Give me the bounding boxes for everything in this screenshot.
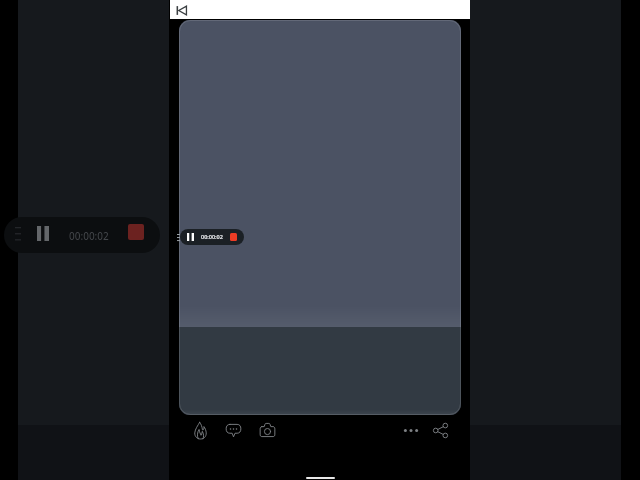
staticText: 00:00:02 xyxy=(69,229,109,243)
button[interactable]: Screen recording controls xyxy=(180,229,244,245)
button[interactable]: Stop recording xyxy=(227,230,240,244)
button[interactable]: Share xyxy=(428,418,452,442)
button[interactable]: Comments xyxy=(221,418,245,442)
button[interactable]: Pause recording xyxy=(184,230,196,244)
button[interactable]: Camera xyxy=(255,418,279,442)
button[interactable]: Move recorder xyxy=(175,231,182,243)
staticText: 00:00:02 xyxy=(201,233,223,240)
button[interactable]: Previous xyxy=(173,2,189,18)
button[interactable]: Flame xyxy=(188,418,212,442)
button[interactable]: More xyxy=(399,418,423,442)
